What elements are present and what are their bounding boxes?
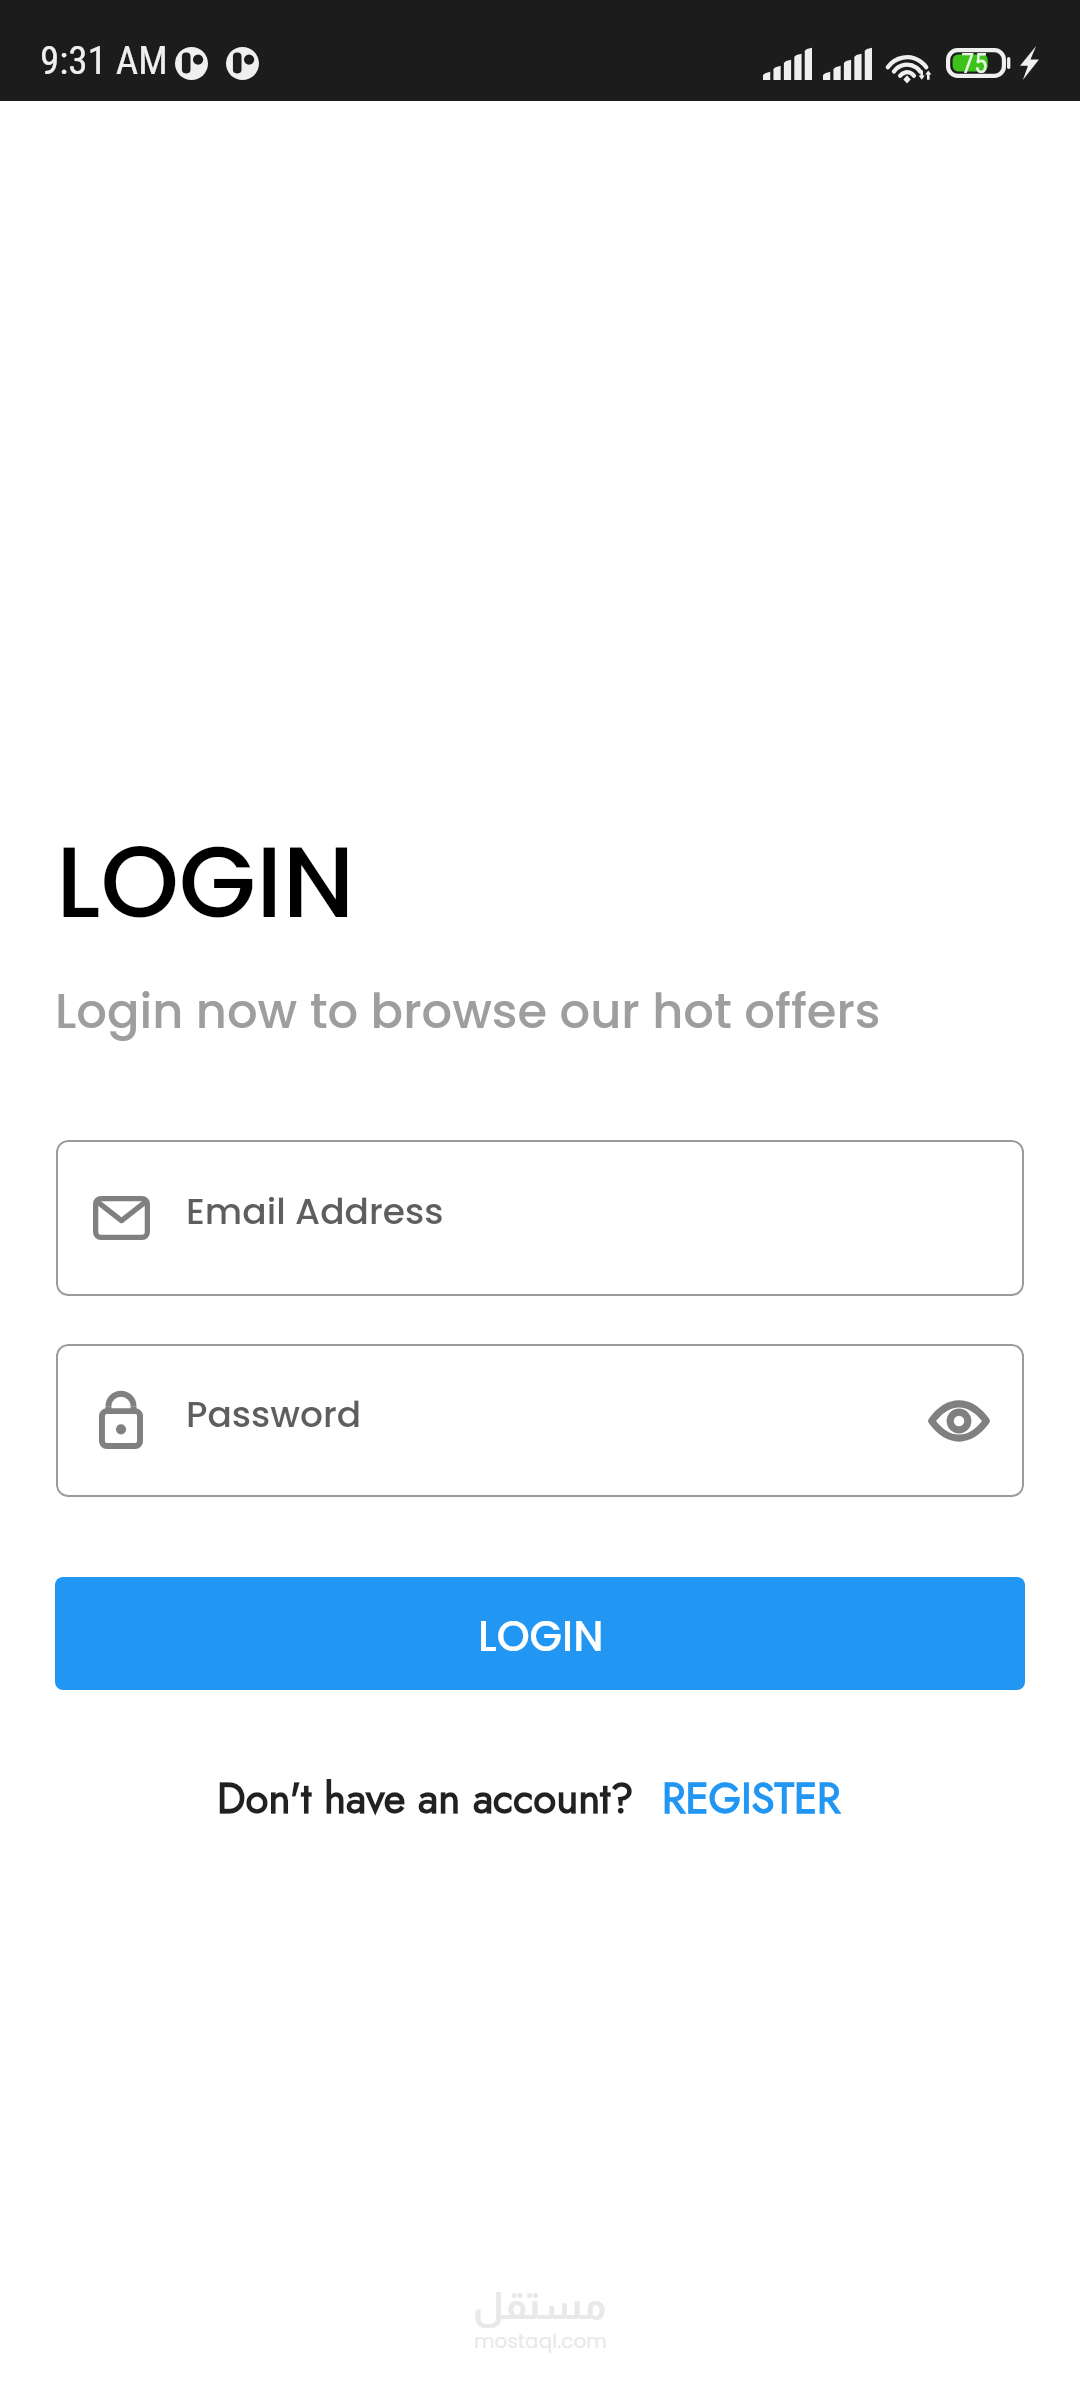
button[interactable]: Email Address [56, 1140, 1024, 1296]
staticText: Login now to browse our hot offers [55, 978, 881, 1045]
staticText: mostaql.com [474, 2327, 607, 2355]
staticText: REGISTER [662, 1768, 841, 1829]
staticText: LOGIN [478, 1607, 604, 1666]
staticText: 9:31 AM [40, 38, 168, 84]
staticText: Email Address [186, 1186, 444, 1236]
button[interactable]: Password [56, 1344, 1024, 1497]
staticText: مستقل [473, 2285, 607, 2327]
staticText: 75 [961, 48, 988, 78]
staticText: Password [186, 1389, 362, 1439]
button[interactable]: Show password [914, 1376, 1004, 1466]
staticText: Don't have an account? [217, 1768, 634, 1829]
button[interactable]: LOGIN [55, 1577, 1025, 1690]
staticText: LOGIN [56, 812, 355, 952]
button[interactable]: REGISTER [662, 1768, 841, 1829]
